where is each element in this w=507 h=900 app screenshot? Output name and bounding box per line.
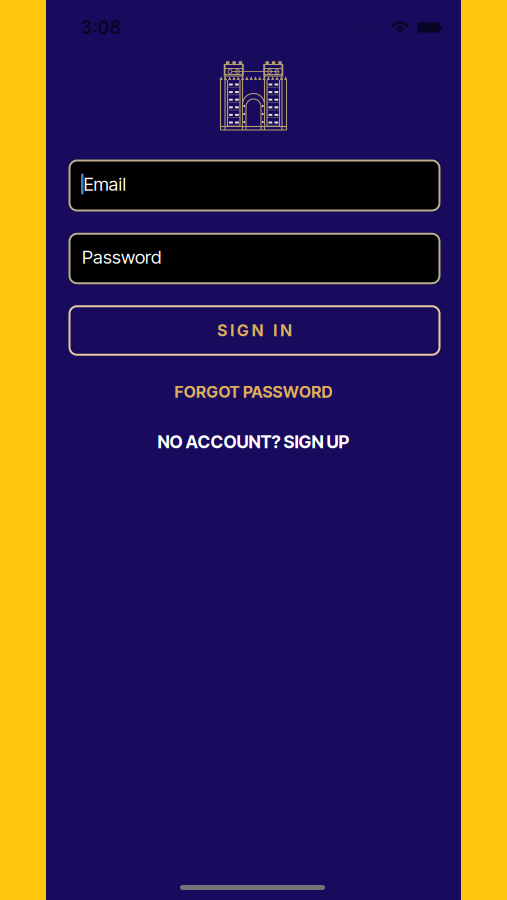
staticText: Email	[83, 173, 126, 195]
button[interactable]: FORGOT PASSWORD	[175, 382, 332, 402]
staticText: Password	[82, 246, 161, 268]
staticText: 3:08	[80, 16, 120, 39]
staticText: NO ACCOUNT? SIGN UP	[157, 431, 349, 452]
button[interactable]: SIGN IN	[68, 305, 440, 356]
button[interactable]: Email	[68, 159, 440, 211]
button[interactable]: Password	[68, 233, 440, 284]
staticText: SIGN IN	[217, 321, 292, 340]
button[interactable]: NO ACCOUNT? SIGN UP	[157, 431, 349, 452]
staticText: FORGOT PASSWORD	[175, 382, 332, 402]
